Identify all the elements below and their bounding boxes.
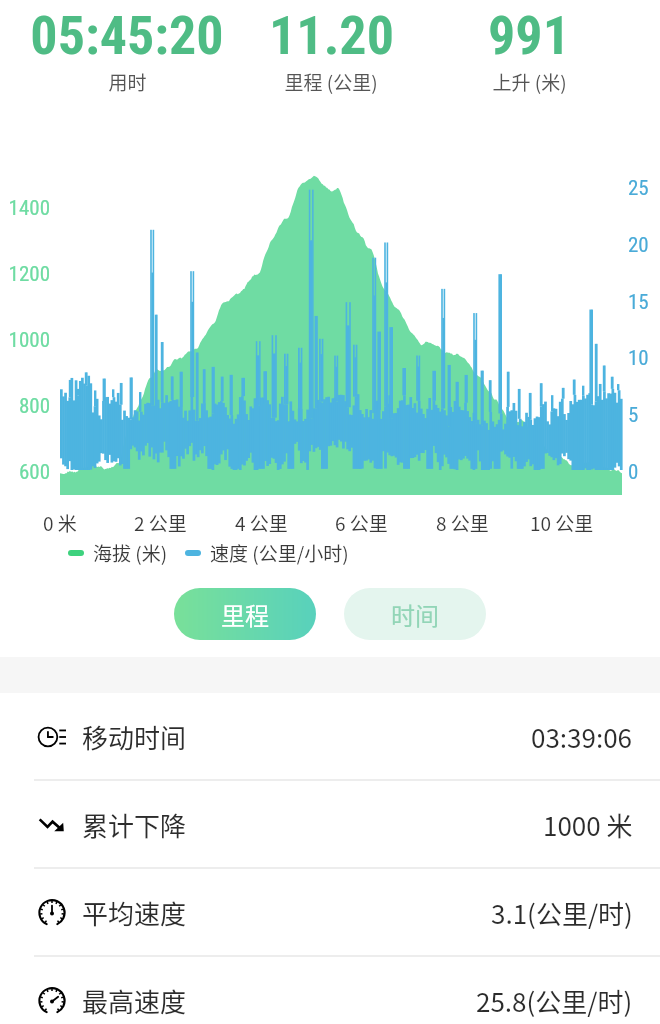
staticText: 上升 (米) [492, 68, 567, 96]
staticText: 用时 [108, 68, 147, 96]
staticText: 时间 [391, 597, 439, 632]
staticText: 25.8(公里/时) [476, 982, 633, 1020]
staticText: 800 [18, 394, 50, 419]
button[interactable]: 移动时间 [0, 693, 660, 781]
staticText: 3.1(公里/时) [491, 894, 633, 932]
staticText: 10 公里 [530, 509, 594, 537]
staticText: 991 [488, 4, 570, 67]
staticText: 25 [628, 176, 649, 201]
staticText: 10 [628, 346, 649, 371]
staticText: 8 公里 [436, 509, 489, 537]
staticText: 2 公里 [134, 509, 187, 537]
staticText: 5 [628, 403, 639, 428]
staticText: 1200 [8, 262, 50, 287]
button[interactable]: 最高速度 [0, 957, 660, 1024]
staticText: 1000 [8, 328, 50, 353]
staticText: 里程 (公里) [284, 68, 378, 96]
staticText: 03:39:06 [531, 718, 633, 756]
staticText: 15 [628, 290, 649, 315]
staticText: 05:45:20 [30, 4, 224, 67]
staticText: 600 [18, 460, 50, 485]
staticText: 4 公里 [235, 509, 288, 537]
button[interactable]: 累计下降 [0, 781, 660, 869]
button[interactable]: 时间 [344, 588, 486, 640]
staticText: 速度 (公里/小时) [210, 539, 349, 567]
staticText: 20 [628, 233, 649, 258]
staticText: 累计下降 [82, 806, 187, 844]
staticText: 6 公里 [335, 509, 388, 537]
staticText: 0 [628, 460, 639, 485]
staticText: 海拔 (米) [93, 539, 168, 567]
staticText: 1000 米 [543, 806, 633, 844]
staticText: 里程 [221, 597, 269, 632]
staticText: 11.20 [269, 4, 394, 67]
staticText: 最高速度 [82, 982, 187, 1020]
staticText: 1400 [8, 196, 50, 221]
button[interactable]: 里程 [174, 588, 316, 640]
staticText: 0 米 [43, 509, 77, 537]
button[interactable]: 平均速度 [0, 869, 660, 957]
staticText: 平均速度 [82, 894, 187, 932]
staticText: 移动时间 [82, 718, 187, 756]
